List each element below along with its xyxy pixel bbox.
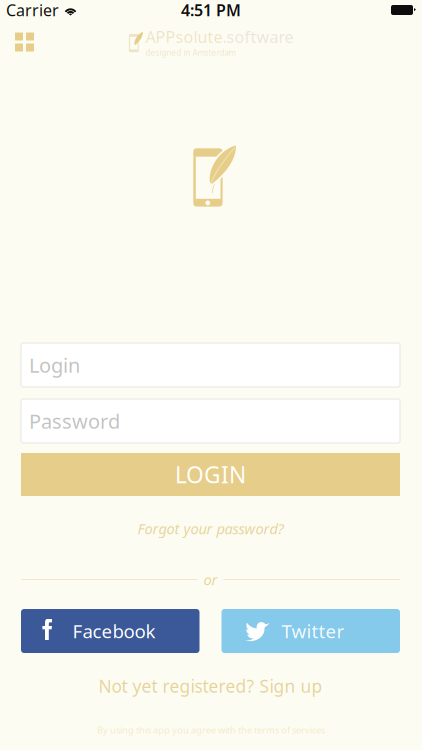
staticText: LOGIN — [175, 459, 246, 489]
button[interactable]: Menu — [0, 26, 46, 57]
staticText: designed in Amsterdam — [145, 47, 235, 58]
button[interactable]: Twitter — [221, 609, 400, 653]
button[interactable]: Forgot your password? — [21, 519, 400, 538]
button[interactable]: Not yet registered? Sign up — [21, 678, 400, 694]
staticText: Login — [29, 352, 80, 378]
staticText: Password — [29, 408, 120, 434]
staticText: By using this app you agree with the ter… — [97, 724, 325, 736]
staticText: or — [203, 570, 217, 589]
staticText: Not yet registered? Sign up — [98, 674, 322, 697]
staticText: APPsolute — [145, 26, 222, 47]
staticText: Facebook — [72, 619, 155, 643]
button[interactable]: LOGIN — [21, 453, 400, 496]
button[interactable]: Facebook — [21, 609, 199, 653]
staticText: Carrier — [6, 0, 59, 21]
staticText: .software — [222, 26, 293, 47]
staticText: Forgot your password? — [137, 519, 283, 538]
staticText: Twitter — [281, 619, 344, 643]
staticText: 4:51 PM — [181, 0, 241, 21]
